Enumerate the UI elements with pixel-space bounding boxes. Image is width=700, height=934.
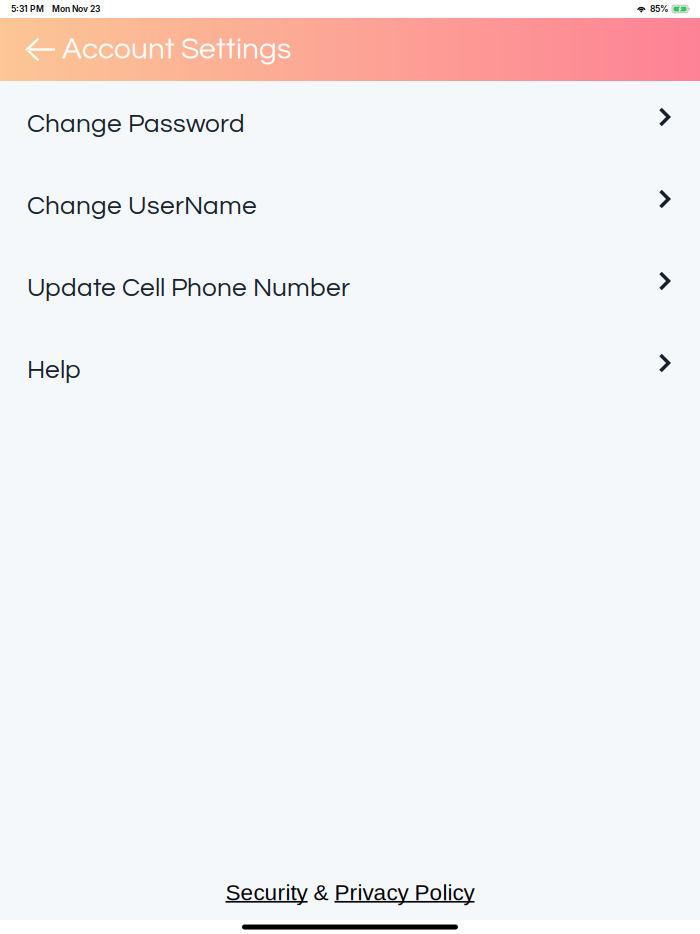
staticText: 85% bbox=[650, 4, 669, 14]
button[interactable]: Privacy Policy bbox=[334, 880, 474, 905]
button[interactable]: Change UserName bbox=[0, 165, 700, 247]
staticText: Mon Nov 23 bbox=[52, 4, 100, 14]
staticText: 5:31 PM bbox=[11, 4, 44, 14]
staticText: Help bbox=[27, 356, 81, 383]
button[interactable]: Security bbox=[225, 880, 307, 905]
staticText: Security bbox=[225, 880, 307, 905]
staticText: Account Settings bbox=[62, 34, 291, 65]
staticText: Change UserName bbox=[27, 192, 257, 219]
staticText: Privacy Policy bbox=[334, 880, 474, 905]
button[interactable]: Back bbox=[27, 28, 62, 70]
button[interactable]: Change Password bbox=[0, 83, 700, 165]
staticText: Update Cell Phone Number bbox=[27, 274, 350, 301]
button[interactable]: Update Cell Phone Number bbox=[0, 247, 700, 329]
button[interactable]: Help bbox=[0, 329, 700, 411]
staticText: & bbox=[307, 880, 334, 905]
staticText: Change Password bbox=[27, 110, 245, 137]
